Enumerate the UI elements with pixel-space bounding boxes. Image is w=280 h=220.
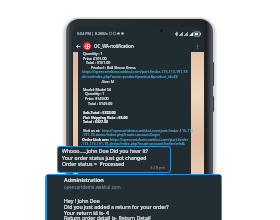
staticText: Hey ! John Doe xyxy=(64,197,100,204)
staticText: Model: Model 54 xyxy=(83,87,112,92)
staticText: Visit us at: xyxy=(83,128,102,133)
staticText: Your return id is- 4 xyxy=(64,209,109,216)
staticText: 5:04 PM | 8.2KB/s xyxy=(77,31,108,36)
staticText: https://opencartdemo.webkul.com/part-fin… xyxy=(82,69,188,74)
staticText: Administration xyxy=(64,176,104,184)
staticText: Order status = Processed xyxy=(62,160,125,167)
staticText: https://opencartdemo.webkul.com/part-fin… xyxy=(110,137,189,142)
staticText: Order Link are: xyxy=(82,137,110,142)
button[interactable]: Back xyxy=(74,42,82,50)
staticText: Sub-Total : $322.00 xyxy=(83,110,116,115)
staticText: -Size: M xyxy=(101,79,114,84)
staticText: http://opencartdemo-webkul.com/part-find… xyxy=(102,128,194,133)
staticText: Flat Shipping Rate : $5.00 xyxy=(83,115,128,120)
staticText: Price: $149.00 xyxy=(85,96,109,101)
staticText: Total : $149.00 xyxy=(88,101,113,106)
staticText: Total : $101.00 xyxy=(86,60,111,65)
staticText: Total : $327.00 xyxy=(83,119,109,124)
staticText: Quantity : 1 xyxy=(85,91,105,96)
staticText: -113-113-191-18-demo/index.php?route=acc… xyxy=(81,141,185,146)
staticText: Whooo.....John Doe Did you hear it? xyxy=(62,147,148,154)
button[interactable]: More options xyxy=(193,42,201,50)
staticText: Your order status just got changed xyxy=(62,154,147,161)
staticText: opencartdemo.webkul.com xyxy=(64,184,121,190)
button[interactable]: Whooo.....John Doe Did you hear it? xyxy=(58,147,170,172)
staticText: Quantity : 1 xyxy=(83,51,103,56)
staticText: 3:28 pm xyxy=(150,165,166,170)
staticText: Return order detail is- Return Detail xyxy=(64,214,151,220)
staticText: Price: £101.00 xyxy=(83,56,107,61)
staticText: Did you just added a return for your ord… xyxy=(64,203,169,210)
staticText: OC_WA-notification xyxy=(94,43,134,49)
staticText: Product : Bell Sleeve Dress xyxy=(91,65,136,70)
staticText: -191-18-demo/index.php?route=account/log… xyxy=(82,132,160,137)
button[interactable]: Administration xyxy=(47,175,221,220)
staticText: -demo/index.php?route=product/product&pr… xyxy=(81,74,178,79)
